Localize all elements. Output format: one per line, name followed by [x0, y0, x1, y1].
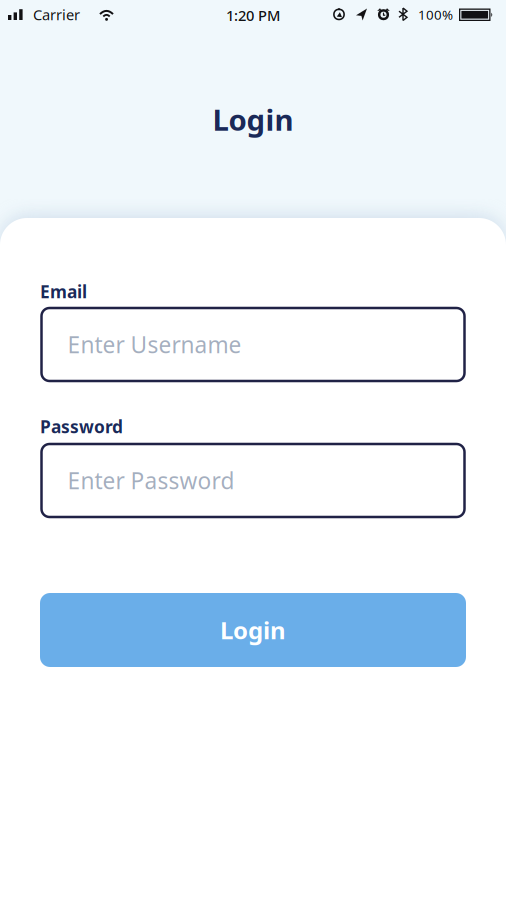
staticText: Email [40, 280, 87, 303]
staticText: Login [212, 100, 293, 139]
button[interactable]: Enter Password [41, 444, 464, 517]
button[interactable]: Enter Username [41, 308, 464, 381]
staticText: Password [40, 415, 123, 438]
staticText: Enter Password [67, 465, 234, 495]
staticText: 100% [418, 6, 453, 23]
staticText: Carrier [33, 5, 80, 24]
staticText: 1:20 PM [226, 5, 280, 25]
button[interactable]: Login [40, 593, 466, 667]
staticText: Login [220, 614, 286, 646]
staticText: Enter Username [67, 329, 241, 359]
